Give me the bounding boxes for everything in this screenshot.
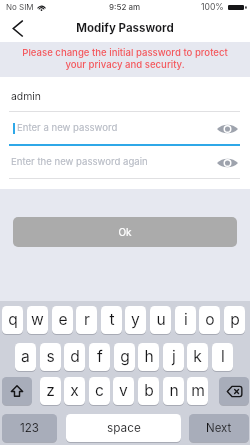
button[interactable]: h (138, 343, 159, 371)
button[interactable]: Next (189, 414, 249, 442)
staticText: c (95, 381, 104, 400)
button[interactable]: n (163, 377, 184, 405)
staticText: Enter a new password (17, 122, 217, 134)
staticText: h (144, 347, 154, 366)
button[interactable]: f (89, 343, 110, 371)
button[interactable]: p (224, 306, 245, 334)
button[interactable]: Back (0, 14, 36, 42)
button[interactable]: Show password (214, 117, 240, 141)
staticText: z (46, 381, 55, 400)
button[interactable]: w (27, 306, 48, 334)
button[interactable]: i (175, 306, 196, 334)
staticText: No SIM (6, 2, 34, 12)
button[interactable]: b (138, 377, 159, 405)
staticText: Ok (118, 226, 132, 238)
staticText: 123 (20, 421, 39, 435)
staticText: x (70, 381, 79, 400)
staticText: Modify Password (76, 21, 174, 35)
staticText: admin (11, 90, 243, 103)
button[interactable]: x (64, 377, 85, 405)
button[interactable]: o (199, 306, 220, 334)
button[interactable]: k (187, 343, 208, 371)
button[interactable]: z (40, 377, 61, 405)
button[interactable]: e (52, 306, 73, 334)
staticText: Next (206, 421, 232, 435)
staticText: e (58, 310, 68, 329)
button[interactable]: space (66, 414, 181, 442)
staticText: p (230, 310, 240, 329)
button[interactable]: d (64, 343, 85, 371)
button[interactable]: c (89, 377, 110, 405)
button[interactable]: a (15, 343, 36, 371)
staticText: d (70, 347, 80, 366)
staticText: space (107, 421, 141, 435)
button[interactable]: u (150, 306, 171, 334)
button[interactable]: Numbers (2, 414, 57, 442)
staticText: t (109, 310, 115, 329)
button[interactable]: r (76, 306, 97, 334)
staticText: k (193, 347, 202, 366)
button[interactable]: Ok (13, 217, 237, 247)
staticText: q (8, 310, 18, 329)
button[interactable]: Shift (2, 377, 32, 405)
staticText: i (184, 310, 188, 329)
button[interactable]: g (114, 343, 135, 371)
staticText: m (191, 381, 205, 400)
button[interactable]: Backspace (219, 377, 249, 405)
staticText: v (119, 381, 128, 400)
staticText: l (221, 347, 225, 366)
staticText: u (156, 310, 166, 329)
staticText: b (144, 381, 154, 400)
button[interactable]: v (113, 377, 134, 405)
button[interactable]: Show password (214, 151, 240, 175)
staticText: 9:52 am (109, 2, 141, 12)
button[interactable]: j (163, 343, 184, 371)
button[interactable]: m (187, 377, 208, 405)
button[interactable]: q (2, 306, 23, 334)
button[interactable]: t (101, 306, 122, 334)
staticText: j (172, 347, 176, 366)
staticText: a (21, 347, 30, 366)
staticText: 100% (201, 2, 224, 12)
staticText: Please change the initial password to pr… (0, 47, 250, 70)
staticText: g (120, 347, 130, 366)
staticText: Enter the new password again (11, 156, 217, 168)
staticText: n (169, 381, 179, 400)
staticText: y (131, 310, 140, 329)
staticText: s (46, 347, 55, 366)
button[interactable]: y (125, 306, 146, 334)
staticText: r (84, 310, 90, 329)
staticText: w (31, 310, 44, 329)
button[interactable]: s (40, 343, 61, 371)
staticText: f (97, 347, 103, 366)
staticText: o (205, 310, 215, 329)
button[interactable]: l (212, 343, 233, 371)
